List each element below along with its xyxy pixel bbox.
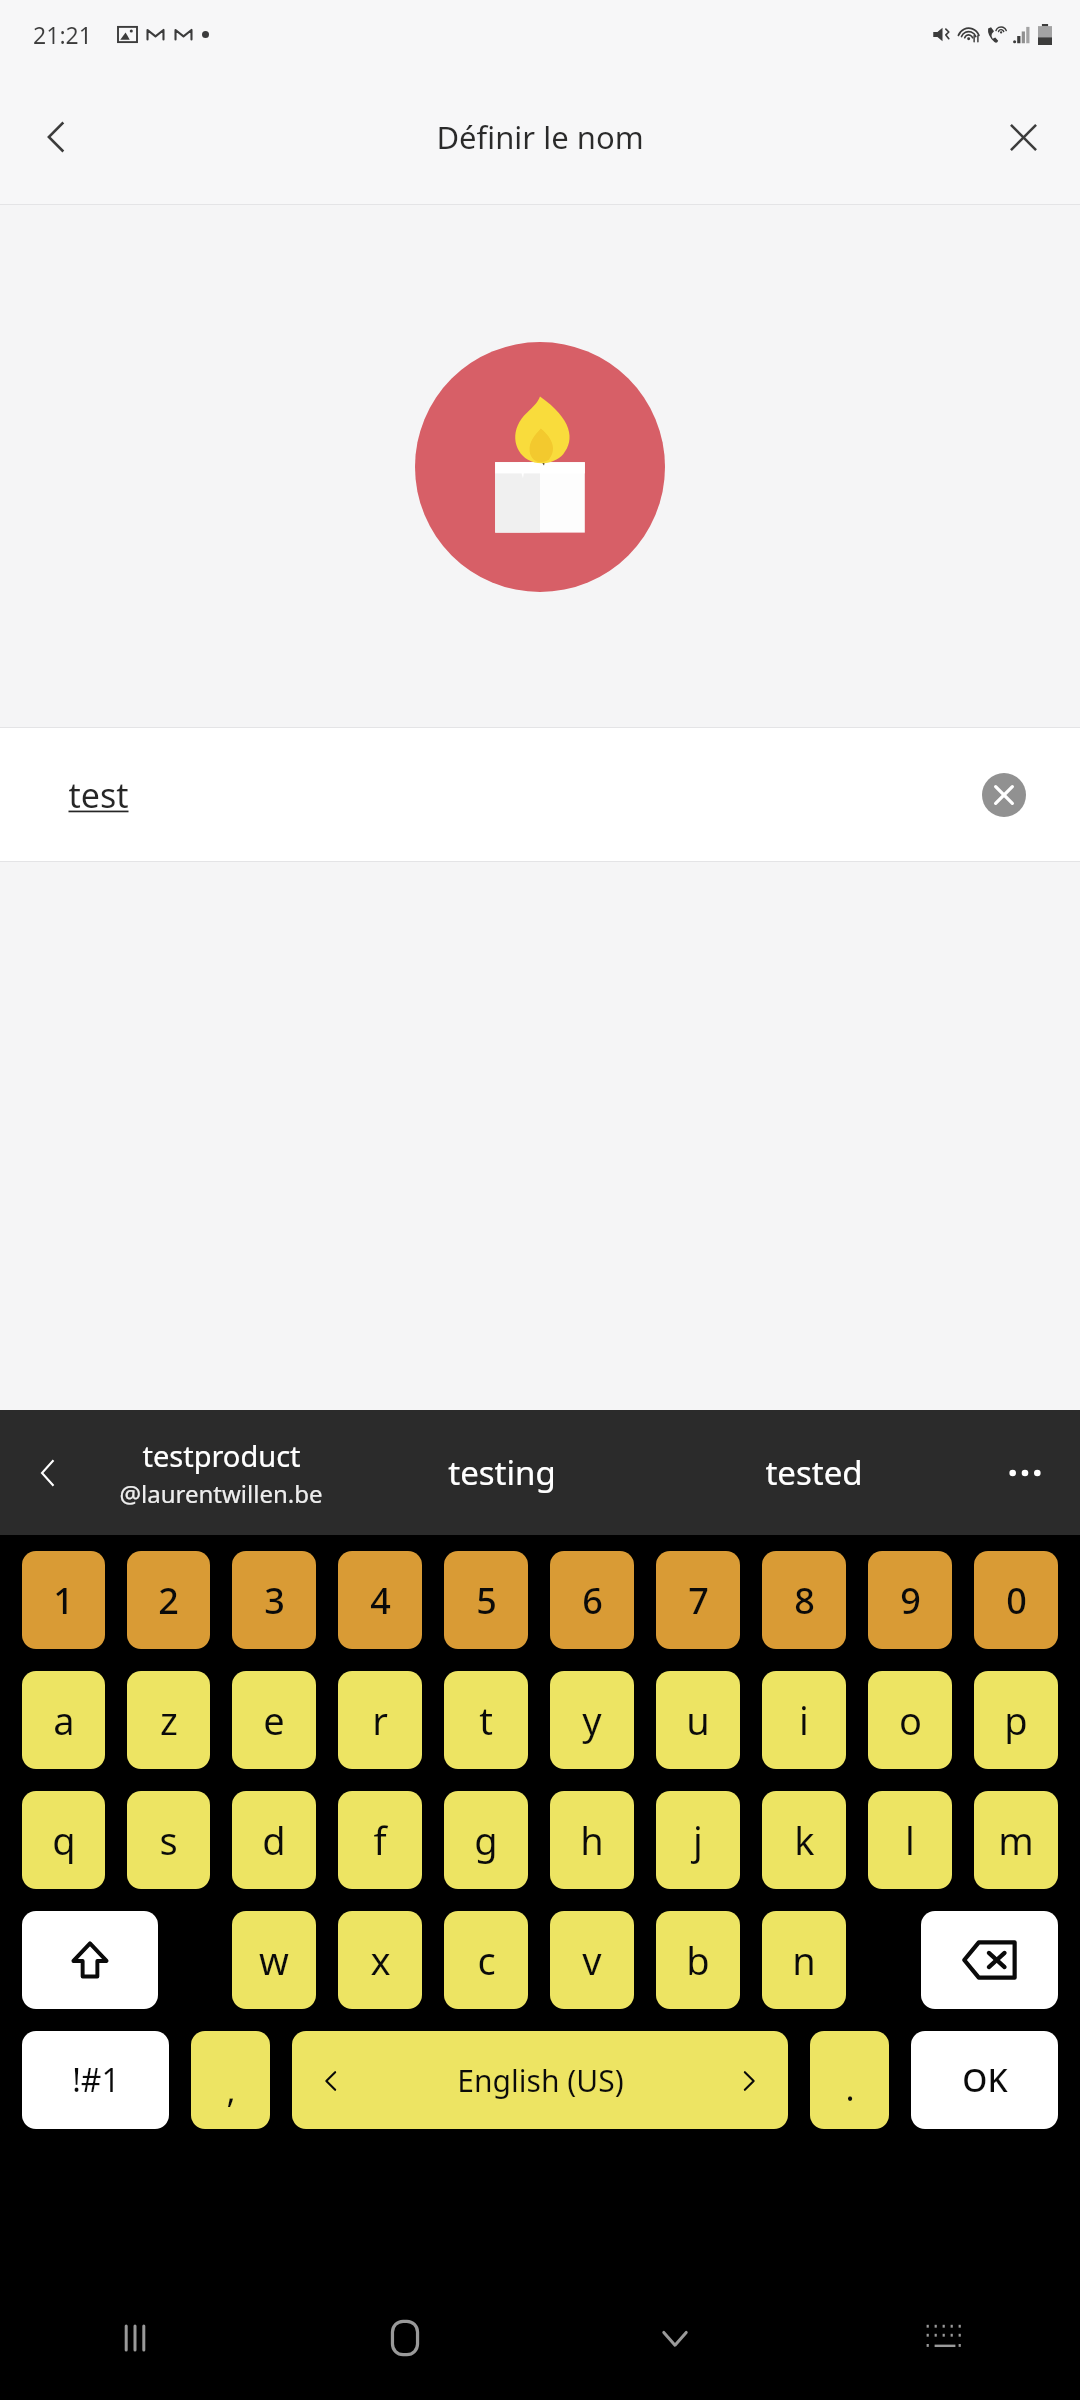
staticText: 0 (1006, 1576, 1027, 1625)
staticText: 3 (264, 1576, 285, 1625)
staticText: b (686, 1934, 710, 1986)
button[interactable]: f (338, 1791, 422, 1889)
button[interactable]: 2 (127, 1551, 210, 1649)
button[interactable]: 0 (974, 1551, 1058, 1649)
staticText: OK (962, 2058, 1008, 2102)
staticText: test (68, 772, 129, 818)
staticText: x (370, 1934, 391, 1986)
button[interactable]: y (550, 1671, 634, 1769)
button[interactable]: 1 (22, 1551, 105, 1649)
button[interactable]: 6 (550, 1551, 634, 1649)
button[interactable]: 3 (232, 1551, 316, 1649)
staticText: 4 (370, 1576, 391, 1625)
staticText: u (686, 1694, 710, 1746)
button[interactable]: Hide keyboard (540, 2275, 810, 2400)
staticText: k (794, 1814, 815, 1866)
button[interactable]: q (22, 1791, 105, 1889)
button[interactable]: More options (970, 1410, 1080, 1535)
button[interactable]: x (338, 1911, 422, 2009)
staticText: m (998, 1814, 1034, 1866)
button[interactable]: OK (911, 2031, 1058, 2129)
button[interactable]: z (127, 1671, 210, 1769)
button[interactable]: k (762, 1791, 846, 1889)
button[interactable]: g (444, 1791, 528, 1889)
staticText: z (160, 1694, 178, 1746)
button[interactable]: testing (346, 1410, 658, 1535)
staticText: Définir le nom (436, 116, 644, 158)
button[interactable]: 8 (762, 1551, 846, 1649)
button[interactable]: 4 (338, 1551, 422, 1649)
button[interactable]: test (0, 728, 1080, 862)
staticText: a (53, 1694, 75, 1746)
button[interactable]: o (868, 1671, 952, 1769)
staticText: j (693, 1814, 703, 1866)
button[interactable]: e (232, 1671, 316, 1769)
button[interactable]: Space, English (US) (292, 2031, 788, 2129)
staticText: y (582, 1694, 602, 1746)
button[interactable]: tested (658, 1410, 970, 1535)
staticText: testing (448, 1450, 556, 1495)
button[interactable]: Backspace (921, 1911, 1058, 2009)
staticText: e (263, 1694, 285, 1746)
staticText: d (262, 1814, 286, 1866)
button[interactable]: w (232, 1911, 316, 2009)
button[interactable]: Change keyboard (810, 2275, 1080, 2400)
button[interactable]: Home (270, 2275, 540, 2400)
staticText: 2 (158, 1576, 179, 1625)
button[interactable]: p (974, 1671, 1058, 1769)
button[interactable]: Previous suggestions (0, 1410, 96, 1535)
staticText: !#1 (72, 2058, 120, 2102)
button[interactable]: v (550, 1911, 634, 2009)
button[interactable]: r (338, 1671, 422, 1769)
staticText: g (474, 1814, 498, 1866)
button[interactable]: Back (18, 98, 96, 176)
button[interactable]: h (550, 1791, 634, 1889)
button[interactable]: l (868, 1791, 952, 1889)
button[interactable]: d (232, 1791, 316, 1889)
button[interactable]: a (22, 1671, 105, 1769)
staticText: w (259, 1934, 289, 1986)
button[interactable]: , (191, 2031, 270, 2129)
button[interactable]: u (656, 1671, 740, 1769)
staticText: r (372, 1694, 388, 1746)
button[interactable]: . (810, 2031, 889, 2129)
staticText: t (479, 1694, 493, 1746)
button[interactable]: 9 (868, 1551, 952, 1649)
staticText: s (159, 1814, 178, 1866)
staticText: c (477, 1934, 496, 1986)
staticText: i (799, 1694, 809, 1746)
staticText: n (792, 1934, 816, 1986)
staticText: testproduct (142, 1436, 301, 1475)
staticText: f (373, 1814, 387, 1866)
button[interactable]: testproduct (96, 1410, 346, 1535)
button[interactable]: n (762, 1911, 846, 2009)
staticText: l (905, 1814, 915, 1866)
button[interactable]: m (974, 1791, 1058, 1889)
staticText: 7 (688, 1576, 709, 1625)
button[interactable]: i (762, 1671, 846, 1769)
button[interactable]: Recent apps (0, 2275, 270, 2400)
staticText: 6 (582, 1576, 603, 1625)
button[interactable]: !#1 (22, 2031, 169, 2129)
staticText: v (582, 1934, 602, 1986)
button[interactable]: 7 (656, 1551, 740, 1649)
button[interactable]: Shift (22, 1911, 158, 2009)
button[interactable]: b (656, 1911, 740, 2009)
staticText: tested (765, 1450, 863, 1495)
staticText: o (899, 1694, 922, 1746)
staticText: English (US) (457, 2060, 624, 2101)
staticText: . (845, 2065, 855, 2111)
staticText: 5 (476, 1576, 497, 1625)
button[interactable]: t (444, 1671, 528, 1769)
button[interactable]: j (656, 1791, 740, 1889)
staticText: p (1004, 1694, 1028, 1746)
button[interactable]: Clear text (976, 767, 1032, 823)
button[interactable]: Close (984, 98, 1062, 176)
button[interactable]: s (127, 1791, 210, 1889)
staticText: 21:21 (33, 19, 92, 50)
button[interactable]: Candle icon (415, 342, 665, 592)
button[interactable]: 5 (444, 1551, 528, 1649)
button[interactable]: c (444, 1911, 528, 2009)
staticText: 8 (794, 1576, 815, 1625)
staticText: q (52, 1814, 76, 1866)
